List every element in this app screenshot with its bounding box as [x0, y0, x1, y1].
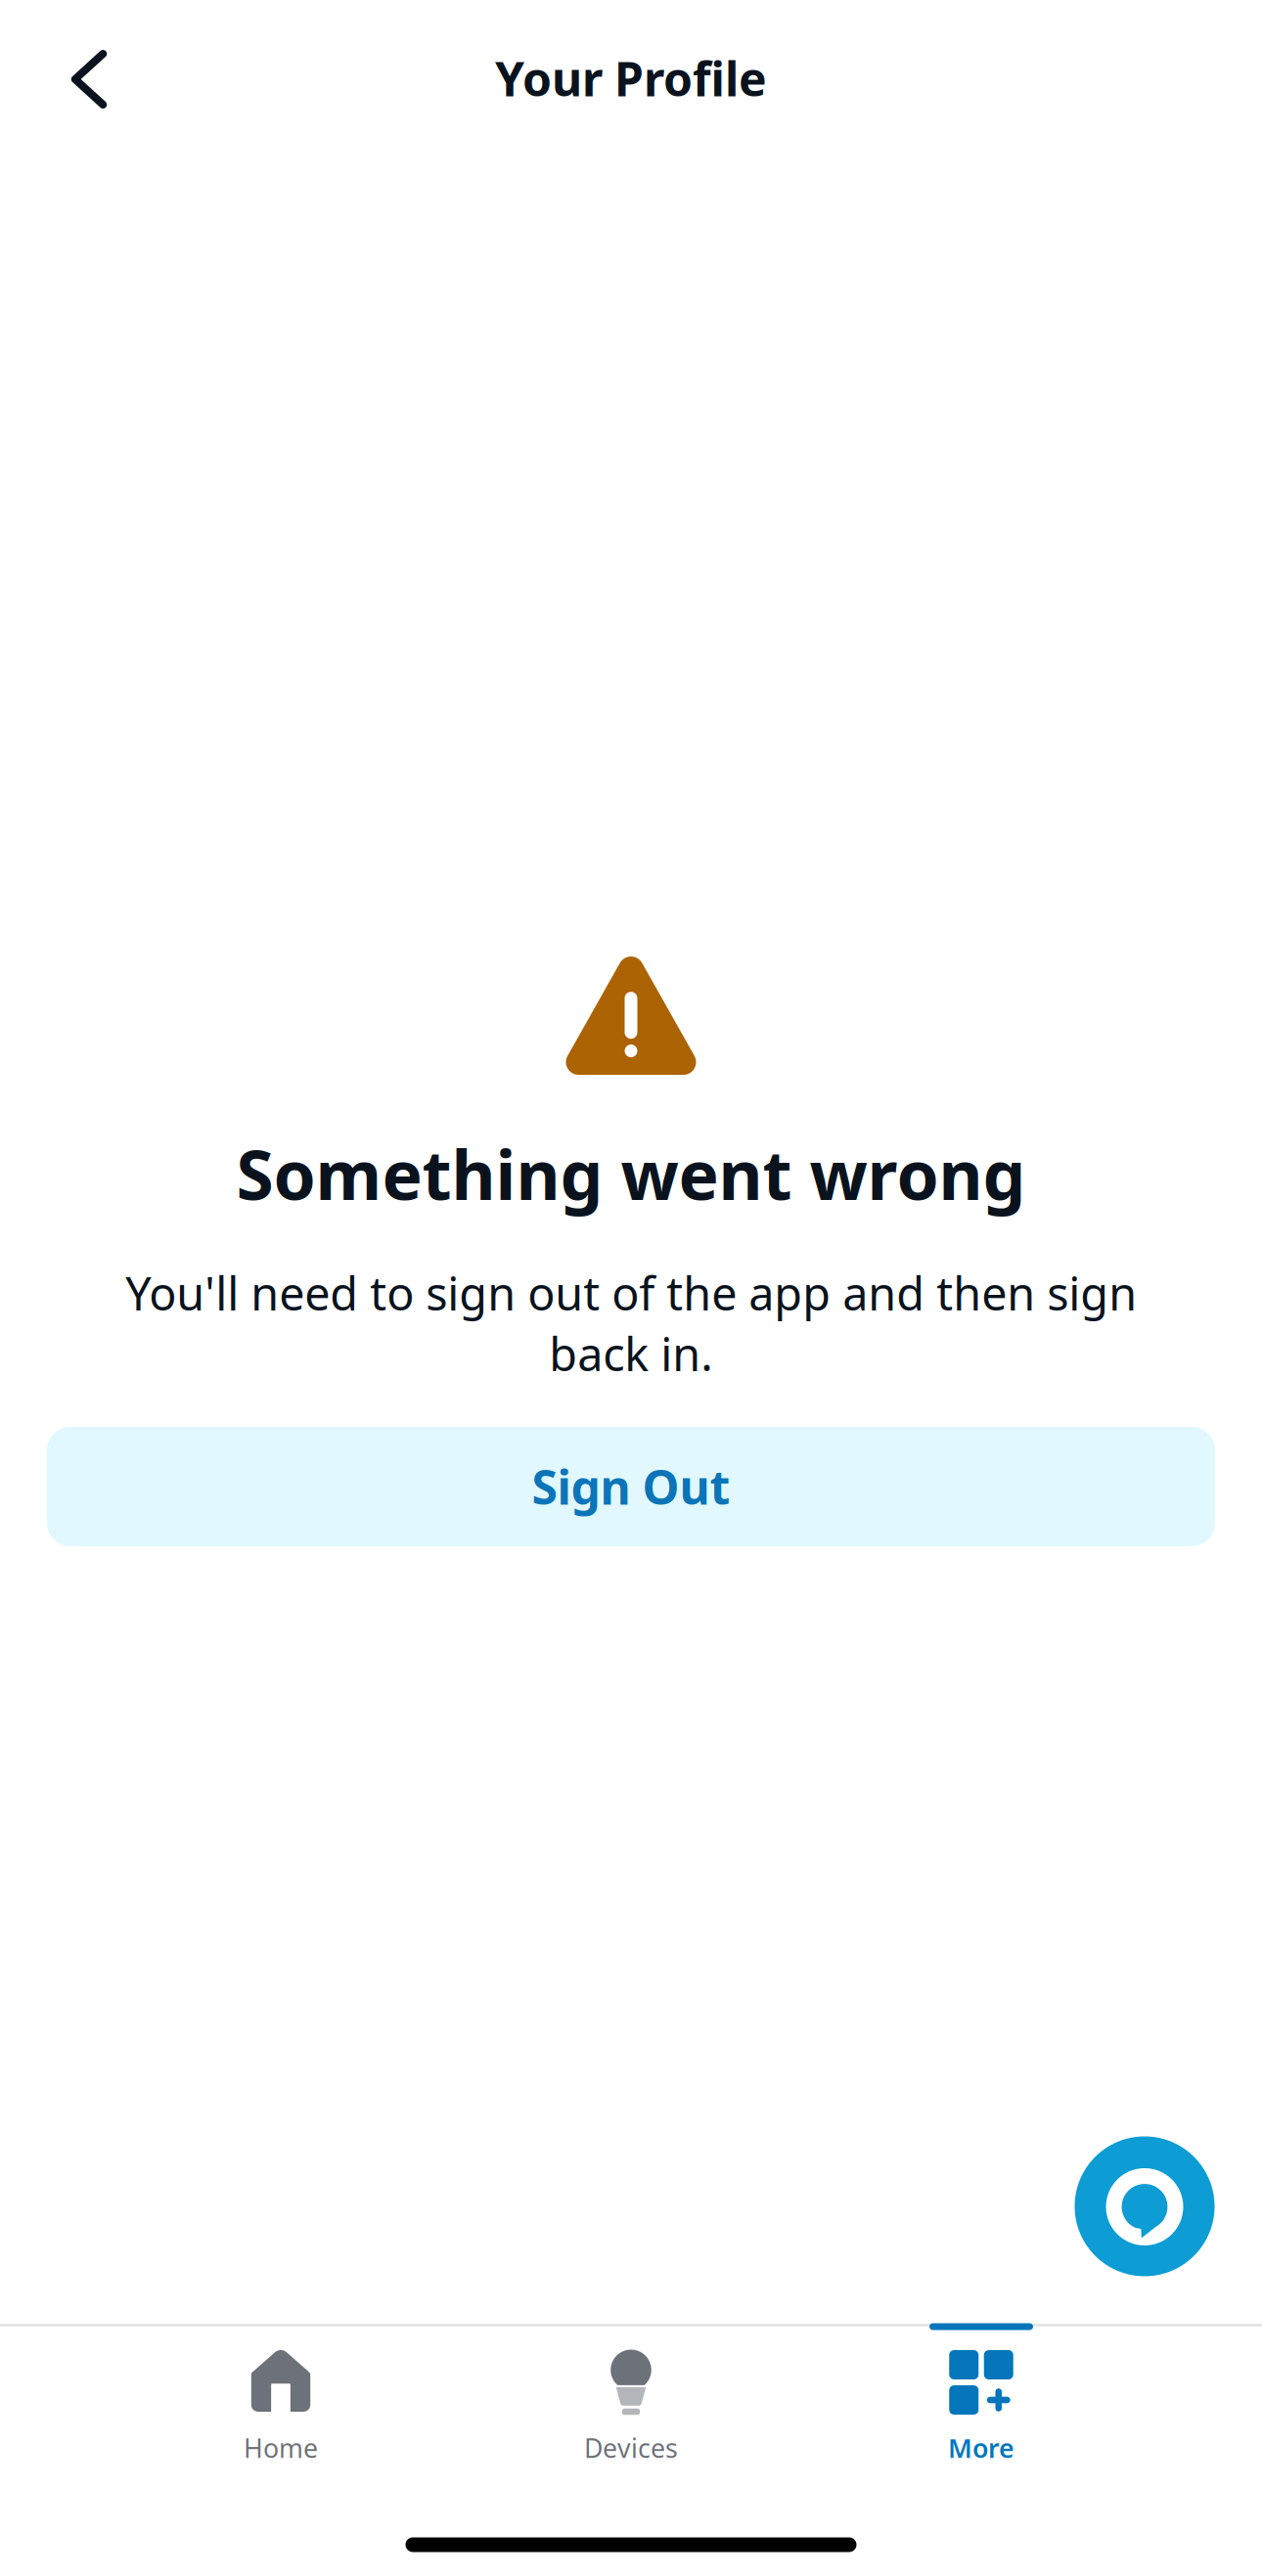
staticText: Devices: [584, 2431, 678, 2465]
button[interactable]: Home: [106, 2324, 456, 2480]
staticText: Sign Out: [532, 1455, 730, 1518]
button[interactable]: Devices: [456, 2324, 806, 2480]
button[interactable]: Alexa: [1075, 2136, 1215, 2276]
button[interactable]: Sign Out: [47, 1427, 1215, 1546]
staticText: Something went wrong: [236, 1129, 1026, 1219]
staticText: Your Profile: [495, 47, 767, 109]
staticText: You'll need to sign out of the app and t…: [125, 1263, 1137, 1384]
button[interactable]: More: [806, 2324, 1156, 2480]
staticText: More: [948, 2431, 1014, 2465]
staticText: Home: [244, 2431, 318, 2465]
button[interactable]: Back: [24, 15, 154, 144]
